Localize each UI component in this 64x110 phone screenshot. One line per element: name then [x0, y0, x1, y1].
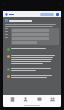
button[interactable]: Search — [40, 13, 54, 16]
button[interactable]: Menu — [56, 13, 59, 16]
button[interactable]: Groups — [47, 95, 57, 104]
button[interactable]: Documents — [7, 95, 17, 104]
button[interactable] — [5, 67, 59, 72]
button[interactable] — [5, 18, 59, 23]
button[interactable]: Profile — [20, 95, 30, 104]
button[interactable] — [5, 54, 59, 65]
button[interactable] — [5, 47, 59, 52]
button[interactable]: Messages — [34, 95, 44, 104]
button[interactable] — [5, 74, 59, 79]
button[interactable]: Back — [5, 13, 14, 16]
